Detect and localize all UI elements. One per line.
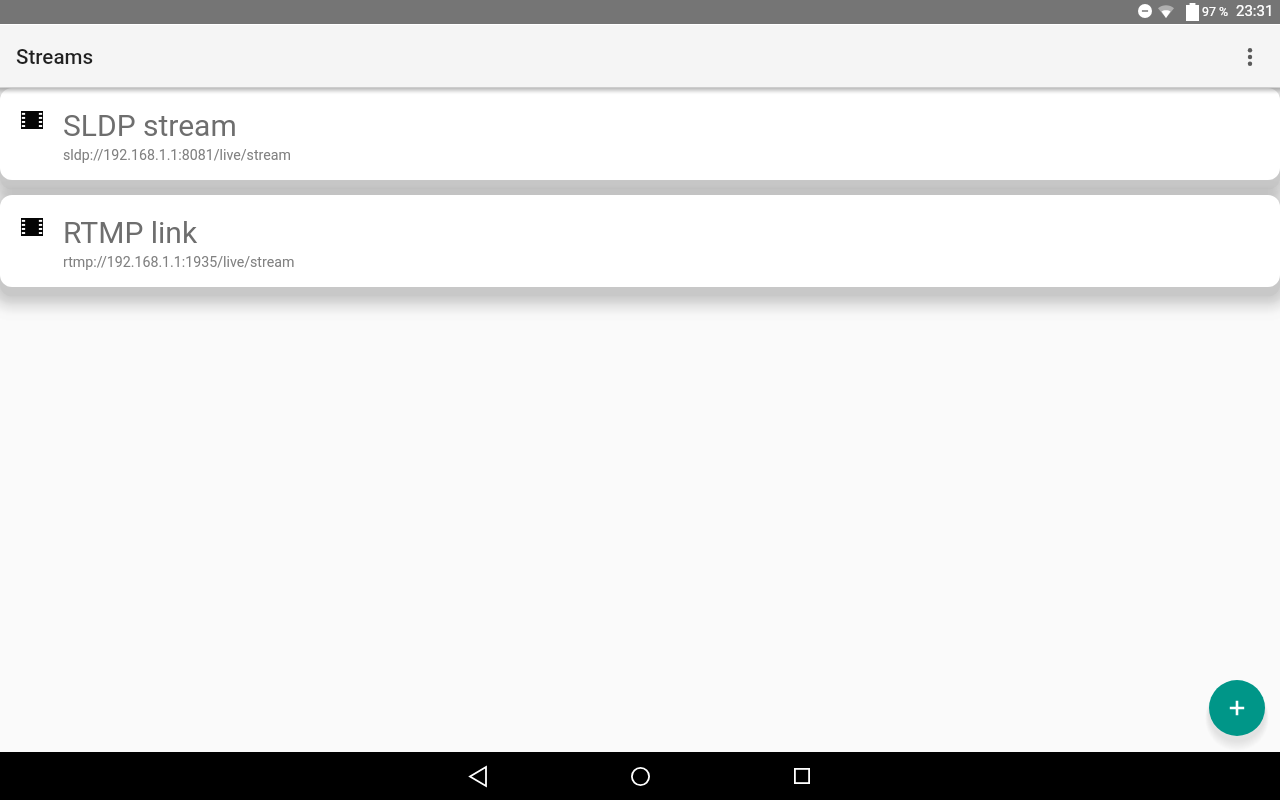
staticText: 97 % — [1202, 4, 1229, 19]
button[interactable]: More options — [1238, 45, 1262, 69]
staticText: rtmp://192.168.1.1:1935/live/stream — [63, 254, 295, 271]
staticText: SLDP stream — [63, 108, 237, 143]
button[interactable]: Back — [397, 752, 559, 800]
staticText: sldp://192.168.1.1:8081/live/stream — [63, 147, 291, 164]
staticText: 23:31 — [1236, 2, 1274, 20]
button[interactable]: SLDP stream — [0, 88, 1280, 180]
button[interactable]: Recent apps — [721, 752, 883, 800]
button[interactable]: Home — [559, 752, 721, 800]
button[interactable]: Add stream — [1209, 680, 1265, 736]
button[interactable]: RTMP link — [0, 195, 1280, 287]
staticText: Streams — [16, 45, 94, 69]
staticText: RTMP link — [63, 215, 198, 250]
